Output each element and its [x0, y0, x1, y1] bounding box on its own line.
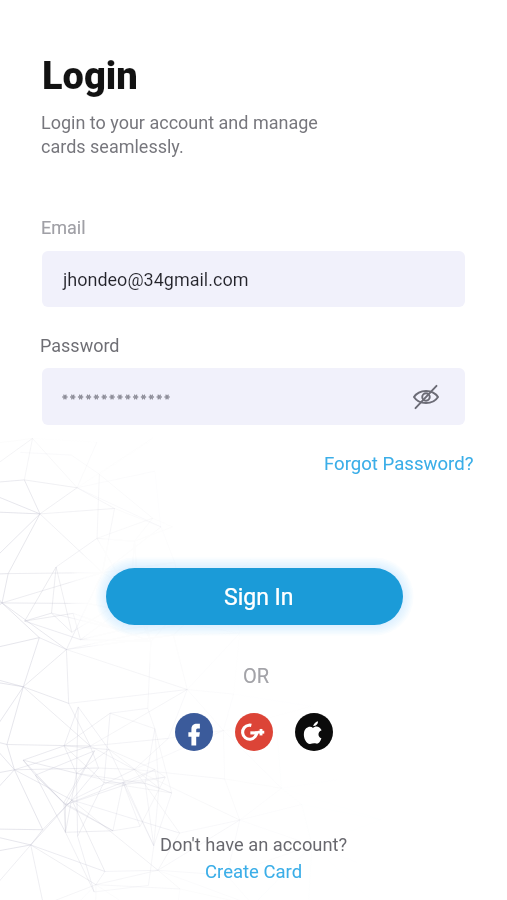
button[interactable]: Sign In: [106, 568, 403, 625]
staticText: Password: [40, 335, 120, 356]
staticText: jhondeo@34gmail.com: [63, 269, 249, 290]
button[interactable]: Sign in with Facebook: [174, 712, 214, 752]
button[interactable]: Forgot Password?: [320, 449, 478, 479]
button[interactable]: Show password: [42, 368, 465, 425]
staticText: Login: [42, 54, 138, 99]
button[interactable]: Sign in with Google Plus: [234, 712, 274, 752]
staticText: Email: [41, 217, 86, 238]
staticText: Don't have an account?: [160, 834, 348, 855]
staticText: OR: [243, 664, 270, 687]
staticText: Sign In: [224, 584, 294, 611]
button[interactable]: Sign in with Apple: [294, 712, 334, 752]
staticText: Login to your account and manage cards s…: [41, 112, 318, 157]
button[interactable]: Create Card: [199, 859, 309, 885]
button[interactable]: Show password: [410, 381, 442, 413]
button[interactable]: jhondeo@34gmail.com: [42, 251, 465, 307]
